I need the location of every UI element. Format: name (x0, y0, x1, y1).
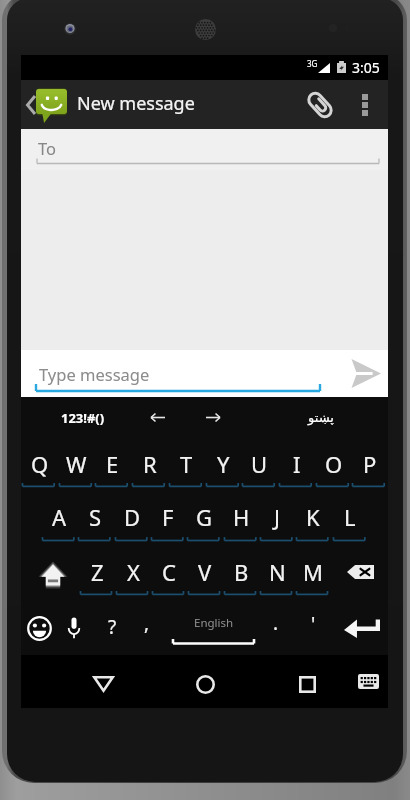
staticText: Q (31, 449, 49, 479)
button[interactable]: L (332, 494, 368, 548)
button[interactable]: X (115, 548, 151, 601)
staticText: ? (108, 614, 117, 640)
button[interactable]: E (94, 440, 131, 494)
staticText: P (363, 449, 377, 479)
button[interactable]: U (241, 440, 278, 494)
button[interactable]: ? (97, 601, 127, 655)
button[interactable]: Z (79, 548, 115, 601)
staticText: E (106, 449, 119, 479)
button[interactable]: Send (341, 352, 391, 395)
button[interactable]: I (278, 440, 315, 494)
button[interactable]: . (261, 601, 291, 655)
staticText: G (196, 502, 213, 532)
staticText: Z (91, 557, 104, 587)
button[interactable]: Y (205, 440, 242, 494)
staticText: New message (77, 91, 195, 116)
staticText: W (66, 449, 87, 479)
staticText: To (38, 137, 57, 159)
button[interactable]: Back (78, 659, 128, 709)
staticText: R (143, 449, 157, 479)
staticText: I (293, 449, 301, 479)
button[interactable]: Back (21, 87, 70, 123)
button[interactable]: H (223, 494, 259, 548)
button[interactable]: S (77, 494, 113, 548)
staticText: Type message (39, 363, 150, 385)
staticText: English (194, 615, 234, 631)
staticText: ' (311, 611, 316, 637)
staticText: O (325, 449, 343, 479)
button[interactable]: J (259, 494, 295, 548)
button[interactable]: Shift (29, 548, 77, 601)
button[interactable]: Space (162, 601, 265, 655)
button[interactable]: B (223, 548, 259, 601)
button[interactable]: Switch keyboard (346, 659, 391, 704)
button[interactable]: N (259, 548, 295, 601)
button[interactable]: A (41, 494, 77, 548)
staticText: K (306, 502, 320, 532)
button[interactable]: , (132, 601, 162, 655)
button[interactable]: Q (21, 440, 58, 494)
button[interactable]: Home (180, 659, 230, 709)
staticText: D (124, 502, 141, 532)
button[interactable]: Enter (336, 601, 388, 655)
button[interactable]: Voice input (58, 601, 90, 655)
button[interactable]: ' (298, 601, 328, 655)
staticText: H (233, 502, 250, 532)
button[interactable]: D (114, 494, 150, 548)
button[interactable]: Recent apps (282, 659, 332, 709)
button[interactable]: T (168, 440, 205, 494)
button[interactable]: F (150, 494, 186, 548)
button[interactable]: Attach (298, 80, 342, 129)
button[interactable]: R (131, 440, 168, 494)
staticText: . (273, 610, 279, 636)
other: Back (26, 93, 36, 117)
button[interactable]: Emoji (21, 601, 57, 655)
staticText: 3:05 (352, 58, 380, 77)
button[interactable]: Backspace (336, 545, 384, 598)
staticText: , (144, 610, 150, 636)
staticText: L (344, 502, 356, 532)
button[interactable]: P (351, 440, 388, 494)
staticText: B (234, 557, 249, 587)
staticText: 3G (307, 58, 318, 69)
button[interactable]: C (151, 548, 187, 601)
button[interactable]: O (315, 440, 352, 494)
button[interactable]: V (187, 548, 223, 601)
staticText: C (162, 557, 176, 587)
staticText: M (303, 557, 323, 587)
staticText: پښتو (308, 410, 334, 425)
staticText: V (198, 557, 212, 587)
button[interactable]: K (295, 494, 331, 548)
staticText: X (127, 557, 140, 587)
staticText: J (274, 502, 281, 532)
staticText: 123!#() (61, 409, 105, 427)
staticText: U (251, 449, 268, 479)
staticText: A (52, 502, 67, 532)
staticText: T (180, 449, 193, 479)
staticText: N (269, 557, 286, 587)
button[interactable]: M (295, 548, 331, 601)
button[interactable]: More options (342, 80, 388, 129)
staticText: S (89, 502, 102, 532)
button[interactable]: G (186, 494, 222, 548)
staticText: Y (217, 449, 230, 479)
staticText: F (162, 502, 174, 532)
button[interactable]: W (58, 440, 95, 494)
